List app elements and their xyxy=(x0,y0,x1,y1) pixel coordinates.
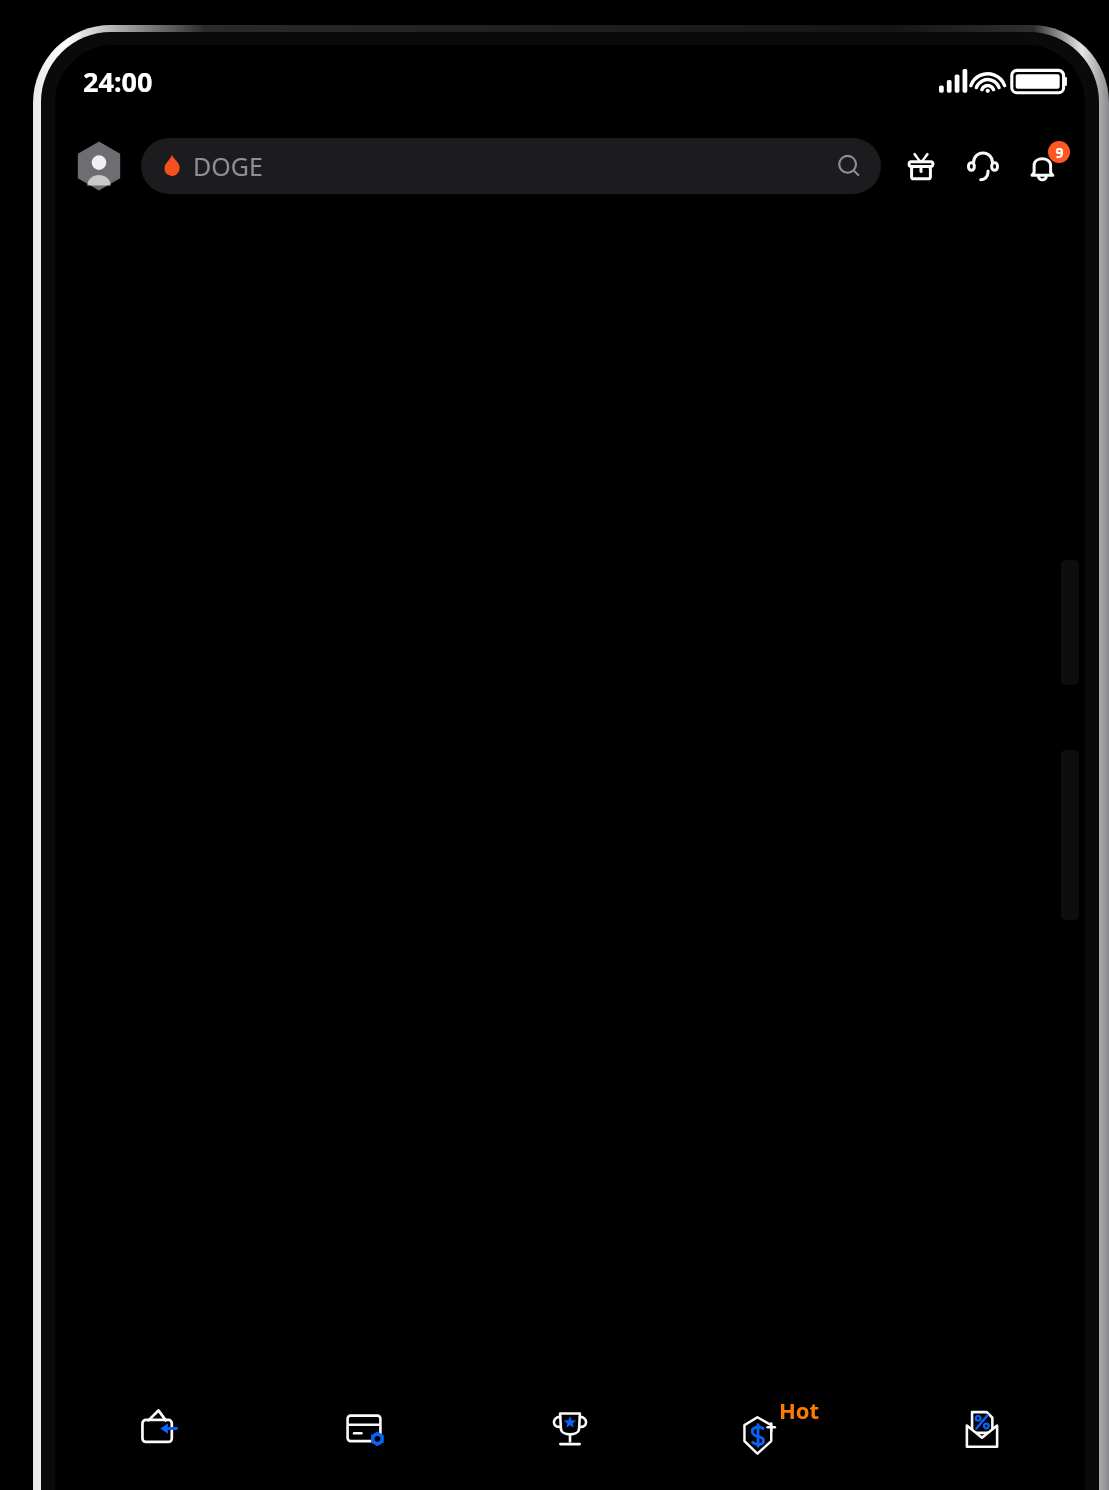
button[interactable]: Profile xyxy=(73,140,125,192)
button[interactable]: Rewards xyxy=(895,140,947,192)
button[interactable]: Support xyxy=(957,140,1009,192)
staticText: 9 xyxy=(1055,143,1064,162)
other: Search xyxy=(835,152,863,180)
button[interactable]: Cards xyxy=(261,1374,467,1484)
button[interactable]: Rewards xyxy=(467,1374,673,1484)
button[interactable]: Deposit xyxy=(55,1374,261,1484)
button[interactable]: Earn xyxy=(673,1374,879,1484)
staticText: Hot xyxy=(779,1395,820,1425)
button[interactable]: Offers xyxy=(879,1374,1085,1484)
button[interactable]: DOGE xyxy=(141,138,881,194)
staticText: DOGE xyxy=(193,149,263,183)
button[interactable]: Notifications xyxy=(1019,140,1071,192)
staticText: 24:00 xyxy=(83,63,153,100)
